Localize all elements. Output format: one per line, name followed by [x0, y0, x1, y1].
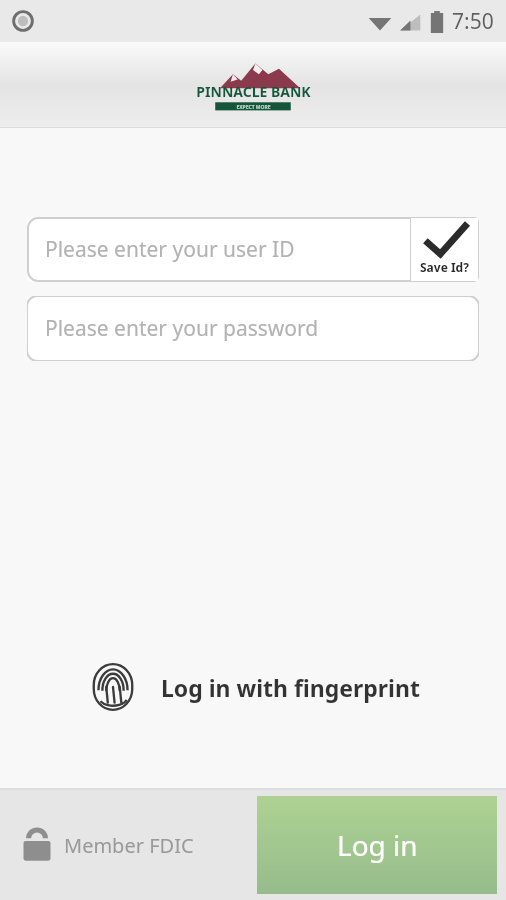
- staticText: Log in with fingerprint: [161, 672, 420, 703]
- staticText: Save Id?: [420, 259, 469, 275]
- staticText: Please enter your password: [45, 314, 319, 343]
- staticText: PINNACLE BANK: [196, 82, 311, 101]
- staticText: EXPECT MORE: [236, 104, 271, 111]
- button[interactable]: Save Id: [410, 217, 479, 282]
- button[interactable]: Log in with fingerprint: [60, 654, 446, 720]
- staticText: Please enter your user ID: [45, 235, 295, 264]
- staticText: 7:50: [452, 7, 494, 36]
- staticText: Log in: [337, 826, 418, 864]
- staticText: Member FDIC: [64, 832, 194, 859]
- button[interactable]: Please enter your password: [27, 296, 479, 361]
- button[interactable]: Log in: [257, 796, 497, 894]
- button[interactable]: Please enter your user ID: [27, 217, 410, 282]
